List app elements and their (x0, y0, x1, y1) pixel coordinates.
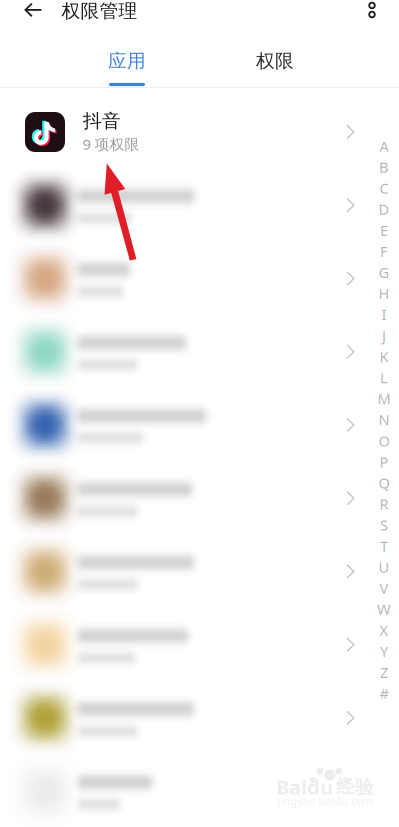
staticText: 权限 (256, 49, 294, 72)
staticText: R (379, 494, 388, 514)
staticText: P (379, 452, 388, 471)
staticText: L (380, 368, 388, 387)
staticText: A (379, 136, 388, 156)
button[interactable]: More options (352, 0, 392, 27)
staticText: E (380, 220, 388, 240)
staticText: S (380, 515, 388, 535)
button[interactable]: Back (10, 0, 56, 27)
staticText: O (378, 431, 389, 450)
staticText: U (378, 557, 389, 577)
staticText: B (379, 157, 389, 177)
staticText: K (379, 347, 388, 366)
staticText: N (378, 410, 389, 429)
button[interactable]: 抖音 (0, 97, 340, 167)
staticText: Z (380, 662, 388, 682)
staticText: Baidu (276, 774, 333, 800)
staticText: 经验 (336, 775, 374, 798)
staticText: F (380, 241, 388, 261)
staticText: X (379, 620, 388, 640)
staticText: D (378, 199, 389, 219)
button[interactable]: 应用 (57, 40, 197, 82)
staticText: C (379, 178, 388, 198)
staticText: Y (380, 641, 388, 661)
staticText: T (380, 536, 388, 556)
staticText: H (378, 284, 389, 303)
button[interactable]: 权限 (205, 40, 345, 82)
staticText: G (378, 263, 389, 282)
staticText: V (379, 578, 388, 598)
staticText: 抖音 (83, 109, 121, 132)
staticText: # (379, 684, 388, 703)
staticText: M (377, 389, 390, 408)
staticText: 权限管理 (61, 0, 137, 22)
staticText: W (377, 599, 391, 619)
staticText: 9 项权限 (82, 134, 139, 154)
staticText: 应用 (108, 49, 146, 72)
staticText: Q (378, 473, 389, 493)
staticText: I (381, 305, 386, 324)
staticText: jingyan.baidu.com (277, 794, 372, 808)
staticText: J (382, 326, 386, 345)
